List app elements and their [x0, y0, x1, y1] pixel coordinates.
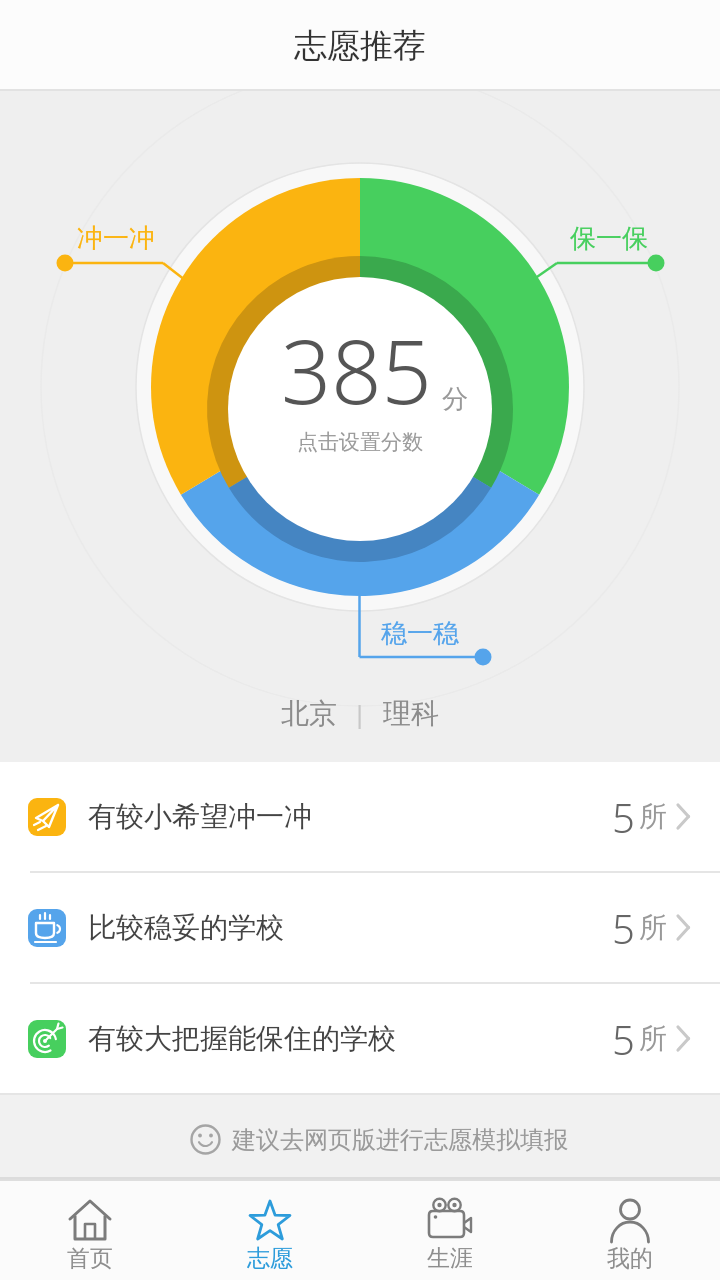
staticText: 5 — [612, 1012, 635, 1066]
button[interactable]: 有较小希望冲一冲 — [0, 762, 720, 871]
staticText: 385 — [281, 310, 432, 430]
staticText: 志愿推荐 — [294, 25, 426, 67]
staticText: 5 — [612, 901, 635, 955]
staticText: 首页 — [67, 1244, 113, 1273]
button[interactable]: 生涯 — [360, 1179, 540, 1280]
staticText: 所 — [639, 910, 667, 945]
staticText: 有较大把握能保住的学校 — [88, 1021, 396, 1056]
staticText: 点击设置分数 — [297, 429, 423, 455]
staticText: 我的 — [607, 1244, 653, 1273]
button[interactable] — [228, 277, 492, 541]
staticText: 生涯 — [427, 1244, 473, 1273]
button[interactable]: 建议去网页版进行志愿模拟填报 — [0, 1093, 720, 1179]
button[interactable]: 志愿 — [180, 1179, 360, 1280]
staticText: | — [353, 697, 367, 730]
staticText: 冲一冲 — [77, 222, 155, 255]
staticText: 5 — [612, 790, 635, 844]
staticText: 建议去网页版进行志愿模拟填报 — [232, 1125, 568, 1155]
button[interactable]: 比较稳妥的学校 — [0, 873, 720, 982]
staticText: 比较稳妥的学校 — [88, 910, 284, 945]
staticText: 稳一稳 — [381, 617, 459, 650]
staticText: 理科 — [383, 696, 439, 731]
button[interactable]: 有较大把握能保住的学校 — [0, 984, 720, 1093]
button[interactable]: 首页 — [0, 1179, 180, 1280]
staticText: 所 — [639, 1021, 667, 1056]
staticText: 分 — [442, 383, 468, 416]
staticText: 志愿 — [247, 1244, 293, 1273]
staticText: 所 — [639, 799, 667, 834]
staticText: 有较小希望冲一冲 — [88, 799, 312, 834]
button[interactable]: 我的 — [540, 1179, 720, 1280]
staticText: 北京 — [281, 696, 337, 731]
staticText: 保一保 — [570, 222, 648, 255]
